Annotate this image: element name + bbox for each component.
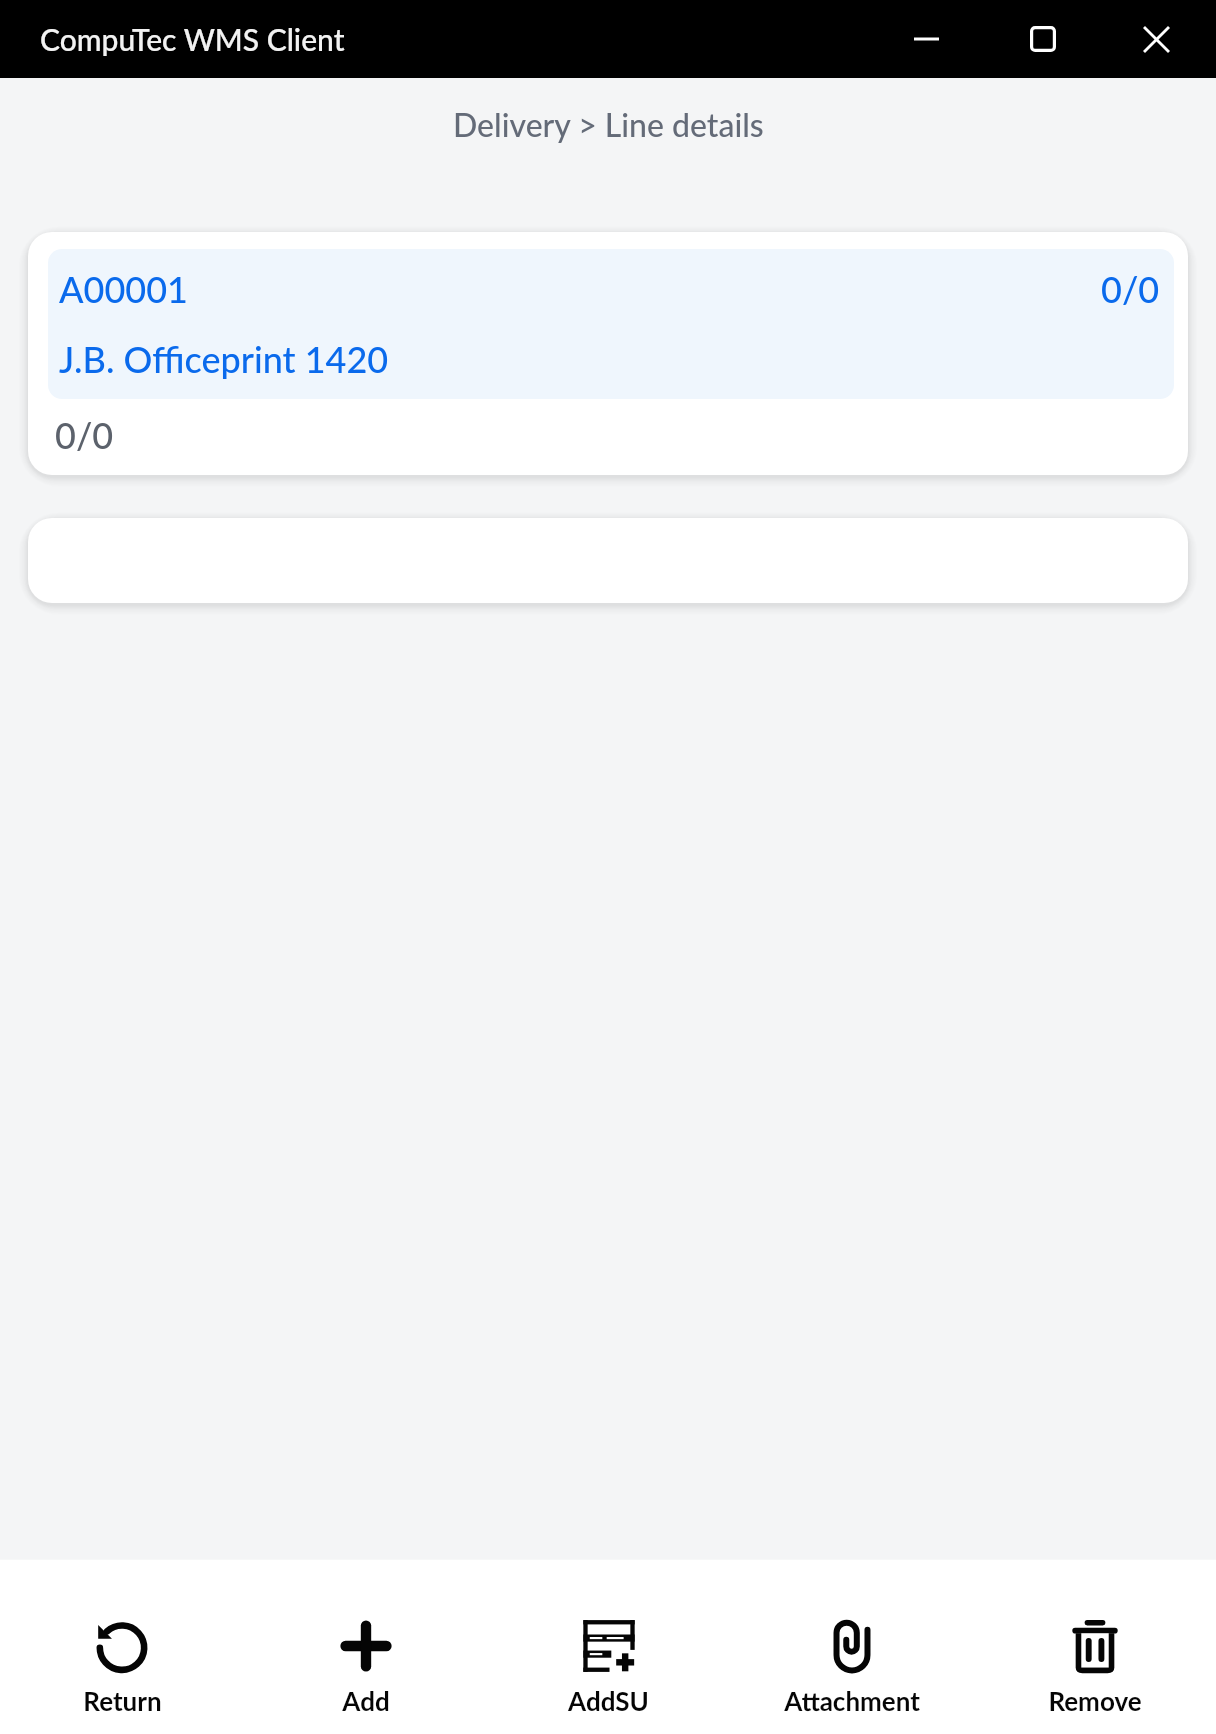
- staticText: Remove: [1048, 1685, 1142, 1716]
- staticText: Add: [342, 1685, 390, 1716]
- button[interactable]: Add: [244, 1560, 487, 1734]
- button[interactable]: Maximize: [983, 0, 1103, 78]
- staticText: 0/0: [1101, 267, 1160, 310]
- staticText: Return: [83, 1685, 162, 1716]
- button[interactable]: Attachment: [730, 1560, 973, 1734]
- staticText: Attachment: [784, 1685, 920, 1716]
- button[interactable]: Remove: [973, 1560, 1216, 1734]
- button[interactable]: Minimize: [866, 0, 986, 78]
- staticText: 0/0: [55, 413, 114, 456]
- button[interactable]: Close: [1096, 0, 1216, 78]
- staticText: A00001: [59, 267, 188, 310]
- staticText: AddSU: [568, 1685, 649, 1716]
- staticText: CompuTec WMS Client: [40, 21, 345, 57]
- staticText: J.B. Officeprint 1420: [59, 337, 389, 380]
- staticText: Delivery > Line details: [453, 105, 764, 143]
- button[interactable]: Add storage unit: [487, 1560, 730, 1734]
- button[interactable]: A00001: [28, 232, 1188, 475]
- button[interactable]: Return: [0, 1560, 244, 1734]
